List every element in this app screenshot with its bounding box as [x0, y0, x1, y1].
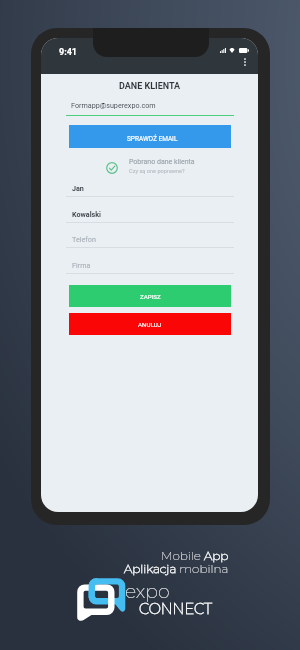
staticText: SPRAWDŹ EMAIL — [127, 135, 178, 143]
staticText: Kowalski — [72, 210, 102, 218]
staticText: expo — [125, 580, 170, 603]
button[interactable]: SPRAWDŹ EMAIL — [69, 125, 231, 148]
staticText: ANULUJ — [138, 321, 162, 328]
staticText: Firma — [72, 261, 91, 269]
staticText: Mobile App — [161, 548, 229, 563]
staticText: ZAPISZ — [140, 293, 161, 300]
staticText: CONNECT — [139, 600, 213, 618]
staticText: Pobrano dane klienta — [129, 158, 195, 166]
button[interactable]: ANULUJ — [69, 313, 231, 335]
staticText: Telefon — [72, 235, 96, 243]
staticText: Aplikacja mobilna — [124, 561, 229, 576]
staticText: Jan — [72, 184, 84, 192]
staticText: 9:41 — [59, 47, 78, 58]
staticText: Formapp@superexpo.com — [71, 101, 156, 109]
button[interactable]: More options — [244, 58, 246, 66]
staticText: DANE KLIENTA — [41, 81, 258, 92]
staticText: Czy są one poprawne? — [129, 168, 185, 175]
button[interactable]: ZAPISZ — [69, 285, 231, 307]
